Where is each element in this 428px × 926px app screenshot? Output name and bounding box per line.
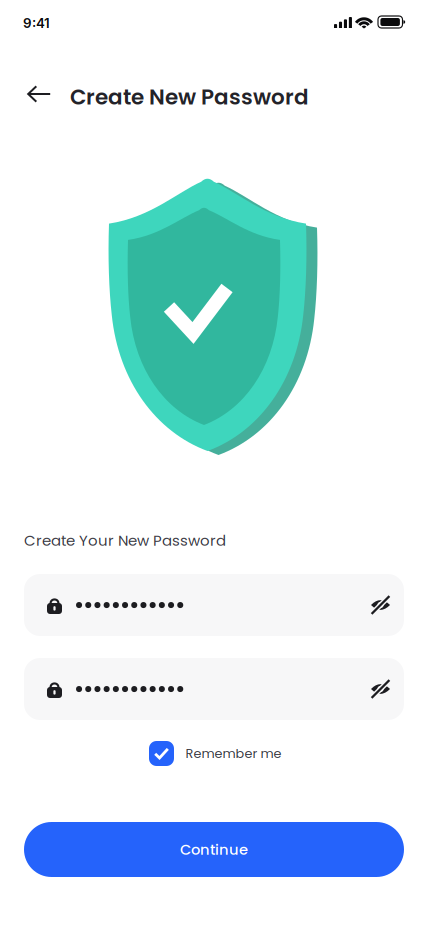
button[interactable]: Continue: [24, 822, 404, 877]
button[interactable]: Remember me: [141, 735, 289, 772]
staticText: Create New Password: [70, 82, 309, 112]
button[interactable]: Show password: [362, 670, 399, 707]
staticText: 9:41: [23, 15, 50, 31]
button[interactable]: Show password: [362, 586, 399, 623]
staticText: Create Your New Password: [24, 530, 226, 551]
staticText: Remember me: [185, 744, 281, 762]
button[interactable]: Back: [14, 70, 64, 118]
staticText: Continue: [180, 839, 248, 860]
